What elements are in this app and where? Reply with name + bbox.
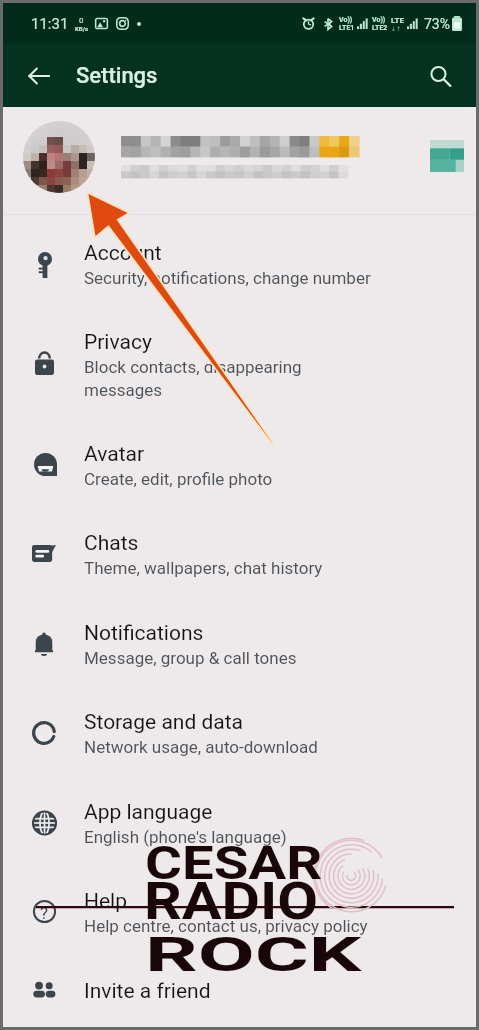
staticText: Create, edit, profile photo	[84, 469, 273, 489]
button[interactable]: Avatar	[3, 415, 476, 504]
staticText: Account	[84, 241, 162, 266]
staticText: Invite a friend	[84, 979, 211, 1004]
staticText: Block contacts, disappearing messages	[84, 357, 302, 400]
staticText: Notifications	[84, 621, 204, 646]
staticText: KB/s	[75, 25, 88, 32]
staticText: App language	[84, 800, 213, 825]
staticText: ?	[40, 903, 49, 923]
staticText: Chats	[84, 531, 139, 556]
staticText: CESAR	[145, 835, 323, 890]
button[interactable]: Chats	[3, 504, 476, 593]
staticText: 11:31	[31, 15, 69, 33]
staticText: Help centre, contact us, privacy policy	[84, 916, 368, 936]
staticText: LTE2	[372, 24, 388, 32]
button[interactable]: Back	[17, 54, 61, 98]
staticText: Vo))	[339, 16, 353, 24]
staticText: Settings	[76, 63, 158, 89]
staticText: Storage and data	[84, 710, 244, 735]
staticText: Message, group & call tones	[84, 648, 297, 668]
button[interactable]: Storage and data	[3, 683, 476, 772]
staticText: LTE1	[339, 24, 355, 32]
staticText: Theme, wallpapers, chat history	[84, 558, 323, 578]
staticText: Network usage, auto-download	[84, 737, 318, 757]
button[interactable]: App language	[3, 773, 476, 862]
staticText: Privacy	[84, 330, 152, 355]
staticText: LTE	[391, 16, 404, 25]
staticText: 0	[79, 16, 84, 25]
button[interactable]: Privacy	[3, 303, 476, 415]
staticText: Security, notifications, change number	[84, 268, 371, 288]
button[interactable]	[3, 107, 476, 214]
button[interactable]: ?	[3, 862, 476, 951]
button[interactable]: Notifications	[3, 594, 476, 683]
staticText: Help	[84, 889, 128, 914]
staticText: RADIO	[144, 872, 319, 932]
staticText: Vo))	[372, 16, 386, 24]
button[interactable]: Invite a friend	[3, 952, 476, 1030]
staticText: 73%	[424, 16, 450, 32]
staticText: Avatar	[84, 442, 145, 467]
button[interactable]: Search	[418, 54, 462, 98]
staticText: ↓↑	[391, 25, 402, 32]
button[interactable]: Account	[3, 214, 476, 303]
staticText: ROCK	[145, 926, 362, 982]
staticText: English (phone's language)	[84, 827, 287, 847]
